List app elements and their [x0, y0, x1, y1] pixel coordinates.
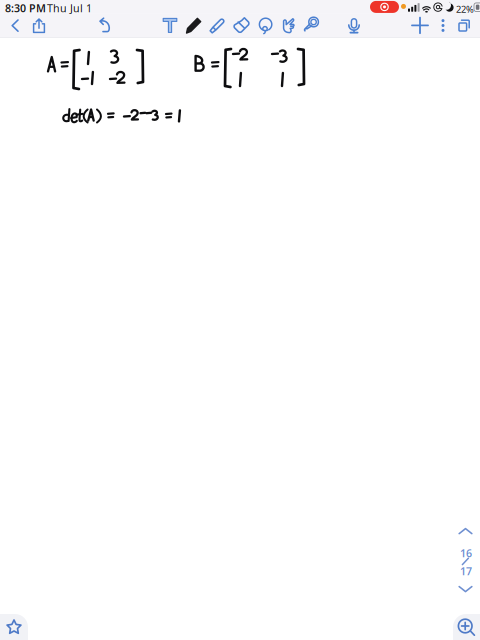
button[interactable]: Share: [27, 14, 51, 37]
button[interactable]: Magnifier tool: [299, 14, 323, 37]
staticText: Thu Jul 1: [47, 1, 92, 15]
staticText: 22%: [456, 3, 474, 15]
button[interactable]: Zoom: [453, 614, 480, 640]
button[interactable]: Undo: [93, 14, 117, 37]
button[interactable]: Hand tool: [277, 14, 301, 37]
button[interactable]: Pen tool: [182, 14, 206, 37]
staticText: 16: [460, 546, 472, 560]
button[interactable]: Previous page: [452, 520, 479, 544]
button[interactable]: Favourite: [0, 614, 28, 640]
button[interactable]: Add: [408, 14, 432, 37]
button[interactable]: Text tool: [158, 14, 182, 37]
button[interactable]: Eraser: [230, 14, 254, 37]
button[interactable]: More options: [434, 14, 452, 37]
button[interactable]: Pages: [452, 14, 476, 37]
button[interactable]: Microphone: [342, 14, 366, 37]
button[interactable]: Back: [4, 14, 26, 37]
staticText: 17: [460, 564, 472, 578]
button[interactable]: Highlighter: [206, 14, 230, 37]
button[interactable]: Lasso: [254, 14, 278, 37]
button[interactable]: Next page: [452, 578, 479, 602]
staticText: 8:30 PM: [5, 1, 46, 15]
